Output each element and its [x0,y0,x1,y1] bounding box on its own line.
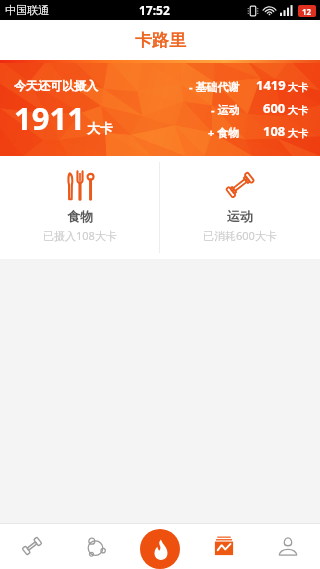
staticText: 大卡 [288,104,308,117]
staticText: 108 [263,122,286,140]
staticText: 17:52 [139,2,170,18]
staticText: 600 [263,99,286,117]
staticText: 大卡 [87,120,113,136]
staticText: 今天还可以摄入 [14,78,98,93]
staticText: 1911 [14,97,85,139]
staticText: 大卡 [288,81,308,94]
button[interactable]: Community [64,523,128,569]
staticText: - 运动 [211,102,240,117]
staticText: 卡路里 [135,30,186,51]
button[interactable]: 运动 [160,156,320,259]
staticText: - 基础代谢 [189,79,240,94]
staticText: 中国联通 [5,3,49,17]
staticText: 1419 [256,76,286,94]
button[interactable]: Profile [256,523,320,569]
staticText: 12 [302,6,312,17]
staticText: 已消耗600大卡 [203,228,277,243]
button[interactable]: 食物 [0,156,159,259]
staticText: 已摄入108大卡 [43,228,117,243]
staticText: 运动 [227,208,253,224]
button[interactable]: Reports [192,523,256,569]
staticText: 大卡 [288,127,308,140]
button[interactable]: Calories [140,529,180,569]
staticText: + 食物 [208,125,240,140]
button[interactable]: Workout [0,523,64,569]
staticText: 食物 [67,208,93,224]
